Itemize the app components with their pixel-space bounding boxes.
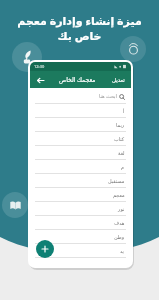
button[interactable]: لغة (30, 146, 131, 160)
staticText: أ (123, 108, 125, 114)
staticText: مستقبل (108, 178, 125, 184)
staticText: 12:30 (34, 64, 45, 69)
staticText: لغة (118, 150, 125, 156)
staticText: يد (120, 248, 125, 254)
button[interactable]: Back (35, 75, 45, 85)
button[interactable]: Search (120, 36, 146, 62)
button[interactable]: يد (30, 244, 131, 258)
staticText: كتاب (114, 136, 125, 142)
staticText: ابحث هنا (99, 93, 117, 100)
button[interactable]: وطن (30, 230, 131, 244)
button[interactable]: أ (30, 104, 131, 118)
button[interactable]: مستقبل (30, 174, 131, 188)
button[interactable]: تعديل (111, 77, 126, 83)
button[interactable]: Add word (36, 240, 54, 258)
button[interactable]: هدف (30, 216, 131, 230)
staticText: نور (118, 206, 125, 212)
staticText: وطن (114, 234, 125, 240)
staticText: ميزة إنشاء وإدارة معجم خاص بك (8, 13, 151, 43)
staticText: م (121, 164, 125, 170)
button[interactable]: ربما (30, 118, 131, 132)
staticText: تعديل (112, 77, 125, 83)
staticText: هدف (114, 220, 125, 226)
button[interactable]: م (30, 160, 131, 174)
staticText: ربما (116, 122, 125, 128)
staticText: معجم (113, 192, 125, 198)
button[interactable]: نور (30, 202, 131, 216)
button[interactable]: كتاب (30, 132, 131, 146)
staticText: معجمك الخاص (59, 76, 96, 84)
button[interactable]: ابحث هنا (99, 93, 125, 100)
button[interactable]: Write (12, 42, 42, 72)
button[interactable]: Dictionary (2, 192, 28, 218)
button[interactable]: معجم (30, 188, 131, 202)
